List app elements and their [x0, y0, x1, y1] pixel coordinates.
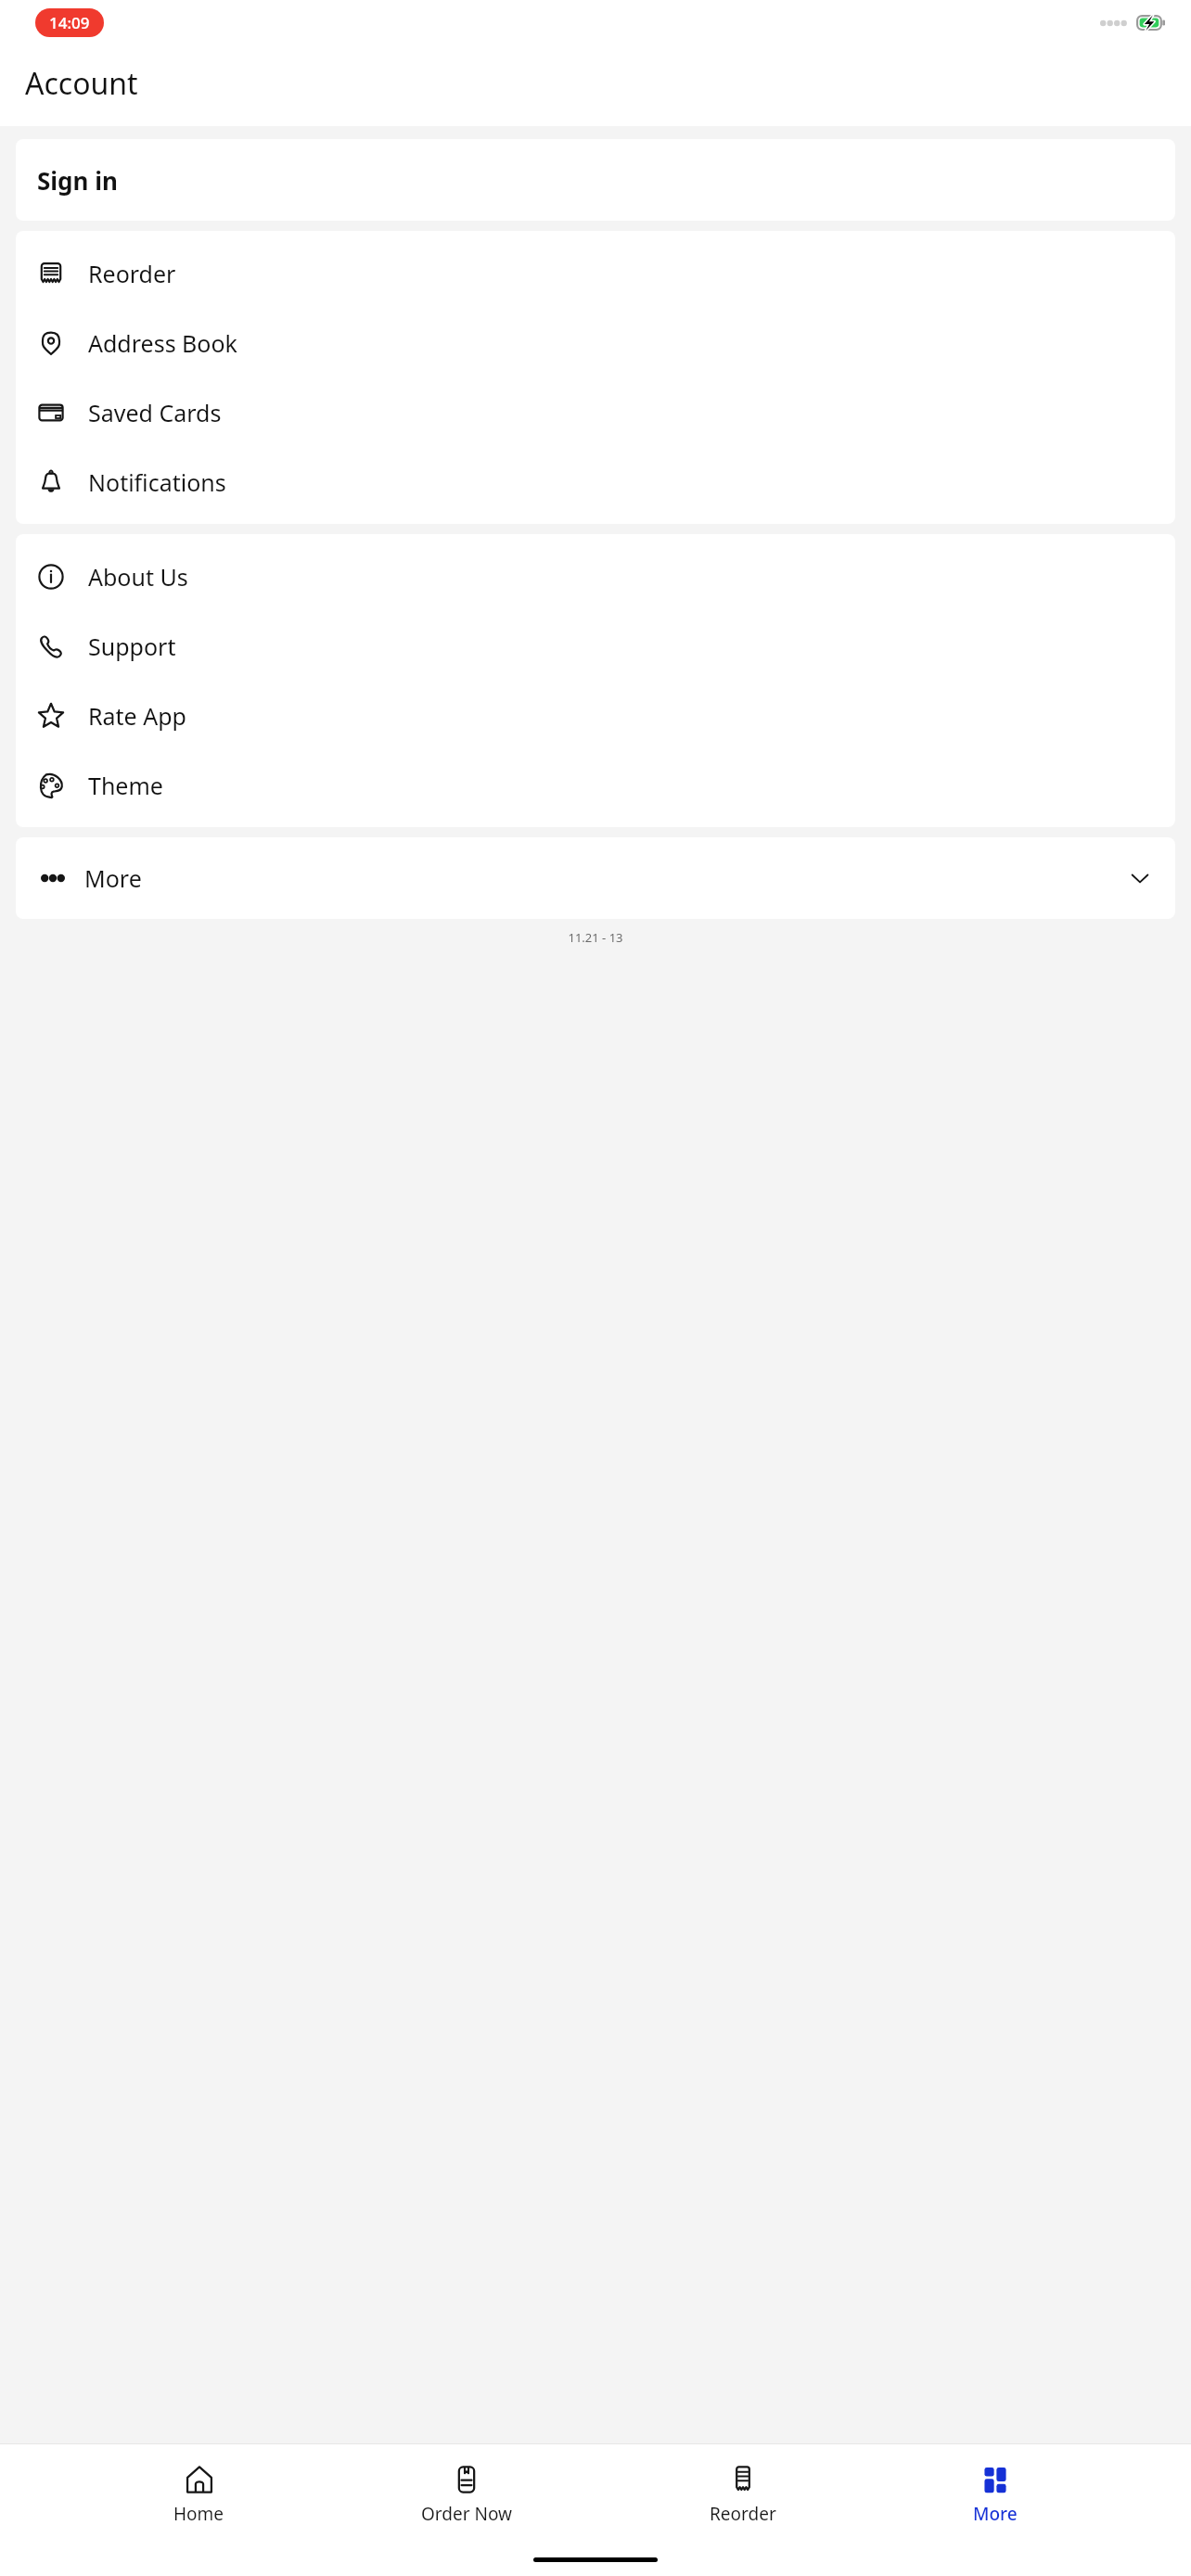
- button[interactable]: About Us: [16, 542, 1175, 611]
- staticText: Rate App: [88, 700, 186, 732]
- staticText: Reorder: [710, 2502, 776, 2526]
- button[interactable]: Reorder: [16, 238, 1175, 308]
- button[interactable]: Sign in: [16, 139, 1175, 221]
- button[interactable]: Order Now: [397, 2458, 536, 2531]
- staticText: Support: [88, 631, 176, 662]
- staticText: Saved Cards: [88, 397, 222, 428]
- button[interactable]: Reorder: [685, 2458, 800, 2531]
- button[interactable]: Address Book: [16, 308, 1175, 377]
- staticText: 14:09: [49, 12, 90, 33]
- button[interactable]: Rate App: [16, 681, 1175, 750]
- button[interactable]: More: [16, 837, 1175, 919]
- button[interactable]: Theme: [16, 750, 1175, 820]
- staticText: Sign in: [37, 164, 118, 197]
- staticText: About Us: [88, 561, 188, 593]
- staticText: Account: [25, 63, 138, 104]
- staticText: More: [973, 2502, 1018, 2526]
- staticText: 11.21 - 13: [0, 929, 1191, 946]
- button[interactable]: More: [949, 2458, 1042, 2531]
- button[interactable]: Home: [149, 2458, 249, 2531]
- button[interactable]: Notifications: [16, 447, 1175, 516]
- other: Expand more: [1130, 868, 1150, 888]
- button[interactable]: Support: [16, 611, 1175, 681]
- staticText: Order Now: [421, 2502, 512, 2526]
- staticText: More: [84, 862, 142, 894]
- staticText: Notifications: [88, 466, 226, 498]
- button[interactable]: Saved Cards: [16, 377, 1175, 447]
- staticText: Reorder: [88, 258, 176, 289]
- staticText: Address Book: [88, 327, 237, 359]
- staticText: Home: [173, 2502, 224, 2526]
- staticText: Theme: [88, 770, 163, 801]
